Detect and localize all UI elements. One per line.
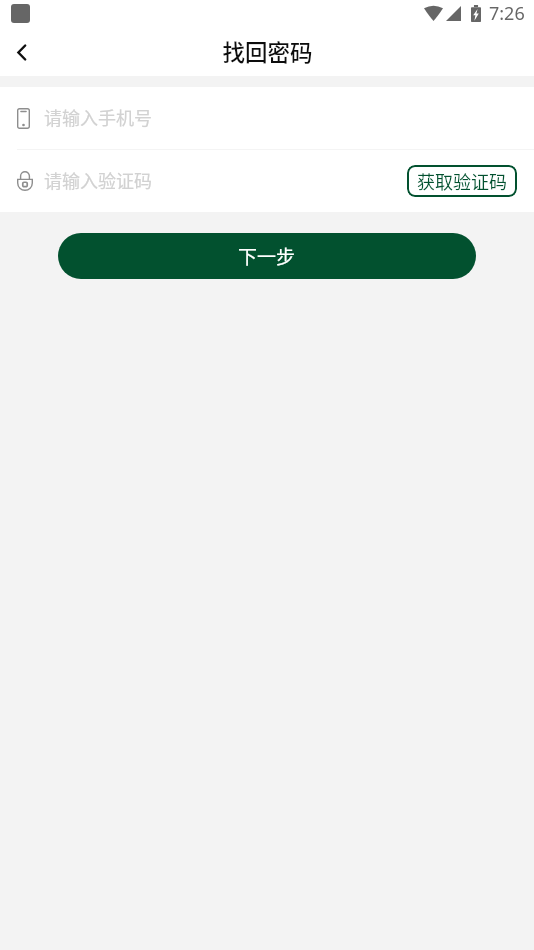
button[interactable]: 下一步 [58, 233, 476, 279]
staticText: 请输入手机号 [44, 104, 517, 130]
staticText: 请输入验证码 [44, 167, 407, 193]
staticText: 下一步 [238, 242, 296, 270]
staticText: 获取验证码 [417, 168, 507, 194]
button[interactable]: Back [0, 28, 48, 76]
staticText: 7:26 [489, 1, 525, 26]
staticText: 找回密码 [222, 35, 313, 68]
button[interactable]: 获取验证码 [407, 165, 517, 197]
